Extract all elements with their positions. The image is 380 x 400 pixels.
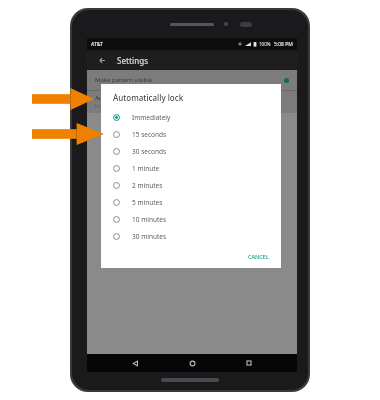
button[interactable]: Back <box>126 354 144 372</box>
staticText: 30 minutes <box>132 232 167 241</box>
button[interactable]: 1 minute <box>101 160 281 177</box>
staticText: 2 minutes <box>132 181 163 190</box>
staticText: Immediately <box>132 113 171 122</box>
staticText: 5 minutes <box>132 198 163 207</box>
staticText: 10 minutes <box>132 215 167 224</box>
button[interactable]: 2 minutes <box>101 177 281 194</box>
button[interactable]: 30 minutes <box>101 228 281 245</box>
staticText: Settings <box>117 55 149 66</box>
button[interactable]: Home <box>183 354 201 372</box>
staticText: AT&T <box>91 41 103 48</box>
staticText: 100% <box>259 41 271 47</box>
staticText: 30 seconds <box>132 147 167 156</box>
button[interactable]: 15 seconds <box>101 126 281 143</box>
staticText: 15 seconds <box>132 130 167 139</box>
button[interactable]: Immediately <box>101 109 281 126</box>
button[interactable]: Recent apps <box>240 354 258 372</box>
button[interactable]: Back <box>95 53 109 67</box>
button[interactable]: Automatically lock <box>87 91 297 113</box>
staticText: Make pattern visible <box>95 76 153 84</box>
button[interactable]: 30 seconds <box>101 143 281 160</box>
button[interactable]: Make pattern visible <box>87 70 297 90</box>
staticText: 1 minute <box>132 164 160 173</box>
staticText: Immediately after sleep <box>95 103 146 109</box>
staticText: Automatically lock <box>95 94 147 102</box>
button[interactable]: 10 minutes <box>101 211 281 228</box>
staticText: Automatically lock <box>113 92 184 103</box>
button[interactable]: 5 minutes <box>101 194 281 211</box>
staticText: 5:08 PM <box>274 41 293 48</box>
button[interactable]: CANCEL <box>236 249 281 264</box>
staticText: CANCEL <box>248 253 269 260</box>
